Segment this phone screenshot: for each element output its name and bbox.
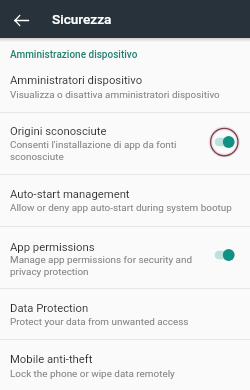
staticText: Protect your data from unwanted access — [10, 316, 189, 328]
button[interactable]: Data Protection — [0, 289, 250, 339]
staticText: Lock the phone or wipe data remotely — [10, 368, 175, 380]
button[interactable]: Toggle setting — [204, 235, 244, 275]
button[interactable]: Origini sconosciute — [0, 113, 250, 174]
button[interactable]: App permissions — [0, 227, 250, 288]
button[interactable]: Auto-start management — [0, 175, 250, 226]
button[interactable]: Amministratori dispositivo — [0, 61, 250, 112]
staticText: Amministrazione dispositivo — [10, 49, 138, 61]
staticText: Manage app permissions for security and … — [10, 254, 213, 278]
staticText: Data Protection — [10, 302, 89, 315]
button[interactable]: Mobile anti-theft — [0, 340, 250, 390]
staticText: Amministratori dispositivo — [10, 74, 143, 87]
staticText: Consenti l'installazione di app da fonti… — [10, 139, 213, 163]
button[interactable]: Toggle setting — [204, 122, 244, 162]
staticText: Allow or deny app auto-start during syst… — [10, 202, 232, 214]
staticText: Auto-start management — [10, 188, 130, 201]
staticText: Sicurezza — [52, 11, 112, 27]
staticText: App permissions — [10, 241, 95, 254]
staticText: Mobile anti-theft — [10, 353, 93, 366]
button[interactable]: Back — [0, 0, 40, 38]
staticText: Visualizza o disattiva amministratori di… — [10, 89, 220, 101]
staticText: Origini sconosciute — [10, 125, 107, 138]
